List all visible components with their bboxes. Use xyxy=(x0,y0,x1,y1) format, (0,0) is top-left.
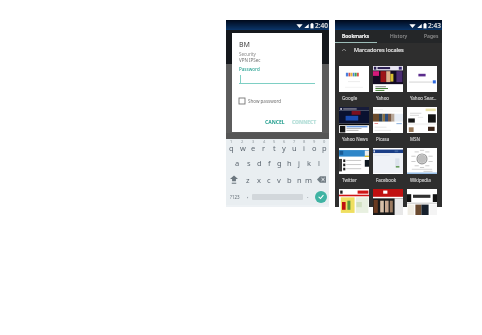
button[interactable]: z xyxy=(242,171,253,188)
staticText: ?123 xyxy=(230,194,240,200)
button[interactable]: , xyxy=(243,188,252,205)
button[interactable]: Shift xyxy=(226,171,242,188)
button[interactable]: CONNECT xyxy=(290,118,319,127)
button[interactable]: Twitter xyxy=(339,148,369,183)
button[interactable]: 0 xyxy=(319,139,329,155)
staticText: u xyxy=(292,143,297,153)
staticText: p xyxy=(322,143,327,153)
button[interactable]: c xyxy=(264,171,274,188)
button[interactable]: MSN xyxy=(407,107,437,142)
button[interactable]: d xyxy=(254,155,264,171)
staticText: n xyxy=(297,175,302,185)
staticText: Pages xyxy=(424,33,439,40)
staticText: k xyxy=(307,158,312,168)
staticText: x xyxy=(257,175,261,185)
button[interactable]: 4 xyxy=(259,139,269,155)
staticText: c xyxy=(267,175,271,185)
staticText: CANCEL xyxy=(265,119,285,126)
button[interactable]: Done xyxy=(315,191,327,203)
button[interactable]: 7 xyxy=(289,139,299,155)
button[interactable]: a xyxy=(232,155,243,171)
staticText: s xyxy=(247,158,251,168)
staticText: Show password xyxy=(248,98,281,104)
button[interactable]: . xyxy=(303,188,312,205)
staticText: 1 xyxy=(230,139,233,144)
staticText: Marcadores locales xyxy=(354,46,404,53)
staticText: 9 xyxy=(313,139,316,144)
button[interactable]: Yahoo Sear... xyxy=(407,66,437,101)
staticText: Twitter xyxy=(342,177,357,183)
staticText: Security xyxy=(239,51,256,57)
button[interactable]: Backspace xyxy=(314,171,329,188)
staticText: VPN IPSec xyxy=(239,57,261,63)
staticText: , xyxy=(247,192,249,200)
button[interactable]: 6 xyxy=(279,139,289,155)
staticText: Facebook xyxy=(376,177,397,183)
button[interactable]: k xyxy=(304,155,314,171)
button[interactable]: Yahoo xyxy=(373,66,403,101)
button[interactable]: CANCEL xyxy=(263,118,287,127)
staticText: r xyxy=(262,143,266,153)
button[interactable]: ?123 xyxy=(226,188,243,205)
staticText: i xyxy=(303,143,305,153)
staticText: 6 xyxy=(283,139,286,144)
button[interactable]: b xyxy=(284,171,294,188)
button[interactable]: 1 xyxy=(226,139,237,155)
staticText: . xyxy=(307,192,309,200)
button[interactable]: h xyxy=(284,155,294,171)
button[interactable]: 8 xyxy=(299,139,309,155)
staticText: m xyxy=(305,175,313,185)
button[interactable]: l xyxy=(314,155,324,171)
button[interactable]: j xyxy=(294,155,304,171)
button[interactable]: 3 xyxy=(248,139,259,155)
staticText: 5 xyxy=(273,139,276,144)
button[interactable]: f xyxy=(264,155,274,171)
staticText: 3 xyxy=(252,139,255,144)
button[interactable] xyxy=(407,189,437,217)
button[interactable]: m xyxy=(304,171,314,188)
staticText: Google xyxy=(342,95,358,101)
staticText: f xyxy=(268,158,271,168)
staticText: d xyxy=(257,158,262,168)
button[interactable]: Picasa xyxy=(373,107,403,142)
staticText: BM xyxy=(239,40,251,50)
button[interactable]: n xyxy=(294,171,304,188)
staticText: g xyxy=(277,158,282,168)
button[interactable]: Show password xyxy=(239,98,281,104)
staticText: j xyxy=(298,158,300,168)
staticText: t xyxy=(273,143,276,153)
staticText: Wikipedia xyxy=(410,177,431,183)
staticText: 2 xyxy=(241,139,244,144)
staticText: History xyxy=(390,33,408,40)
button[interactable]: 5 xyxy=(269,139,279,155)
button[interactable]: Bookmarks xyxy=(335,30,377,43)
staticText: e xyxy=(251,143,256,153)
button[interactable]: s xyxy=(243,155,254,171)
button[interactable] xyxy=(373,189,403,217)
button[interactable]: 2 xyxy=(237,139,248,155)
staticText: Bookmarks xyxy=(342,33,370,40)
button[interactable]: Wikipedia xyxy=(407,148,437,183)
staticText: Picasa xyxy=(376,136,390,142)
staticText: 2:43 xyxy=(428,21,441,30)
button[interactable]: History xyxy=(377,30,421,43)
staticText: w xyxy=(240,143,246,153)
button[interactable]: Google xyxy=(339,66,369,101)
button[interactable]: x xyxy=(253,171,264,188)
staticText: Yahoo News xyxy=(342,136,368,142)
button[interactable]: Marcadores locales xyxy=(335,43,442,56)
button[interactable]: g xyxy=(274,155,284,171)
button[interactable]: Yahoo News xyxy=(339,107,369,142)
button[interactable] xyxy=(339,189,369,217)
staticText: Password xyxy=(239,66,260,72)
button[interactable]: Facebook xyxy=(373,148,403,183)
staticText: Yahoo Sear... xyxy=(410,95,437,101)
button[interactable]: 9 xyxy=(309,139,319,155)
staticText: CONNECT xyxy=(292,119,317,126)
staticText: Yahoo xyxy=(376,95,390,101)
staticText: o xyxy=(312,143,317,153)
staticText: 7 xyxy=(293,139,296,144)
button[interactable]: v xyxy=(274,171,284,188)
button[interactable]: Pages xyxy=(421,30,442,43)
